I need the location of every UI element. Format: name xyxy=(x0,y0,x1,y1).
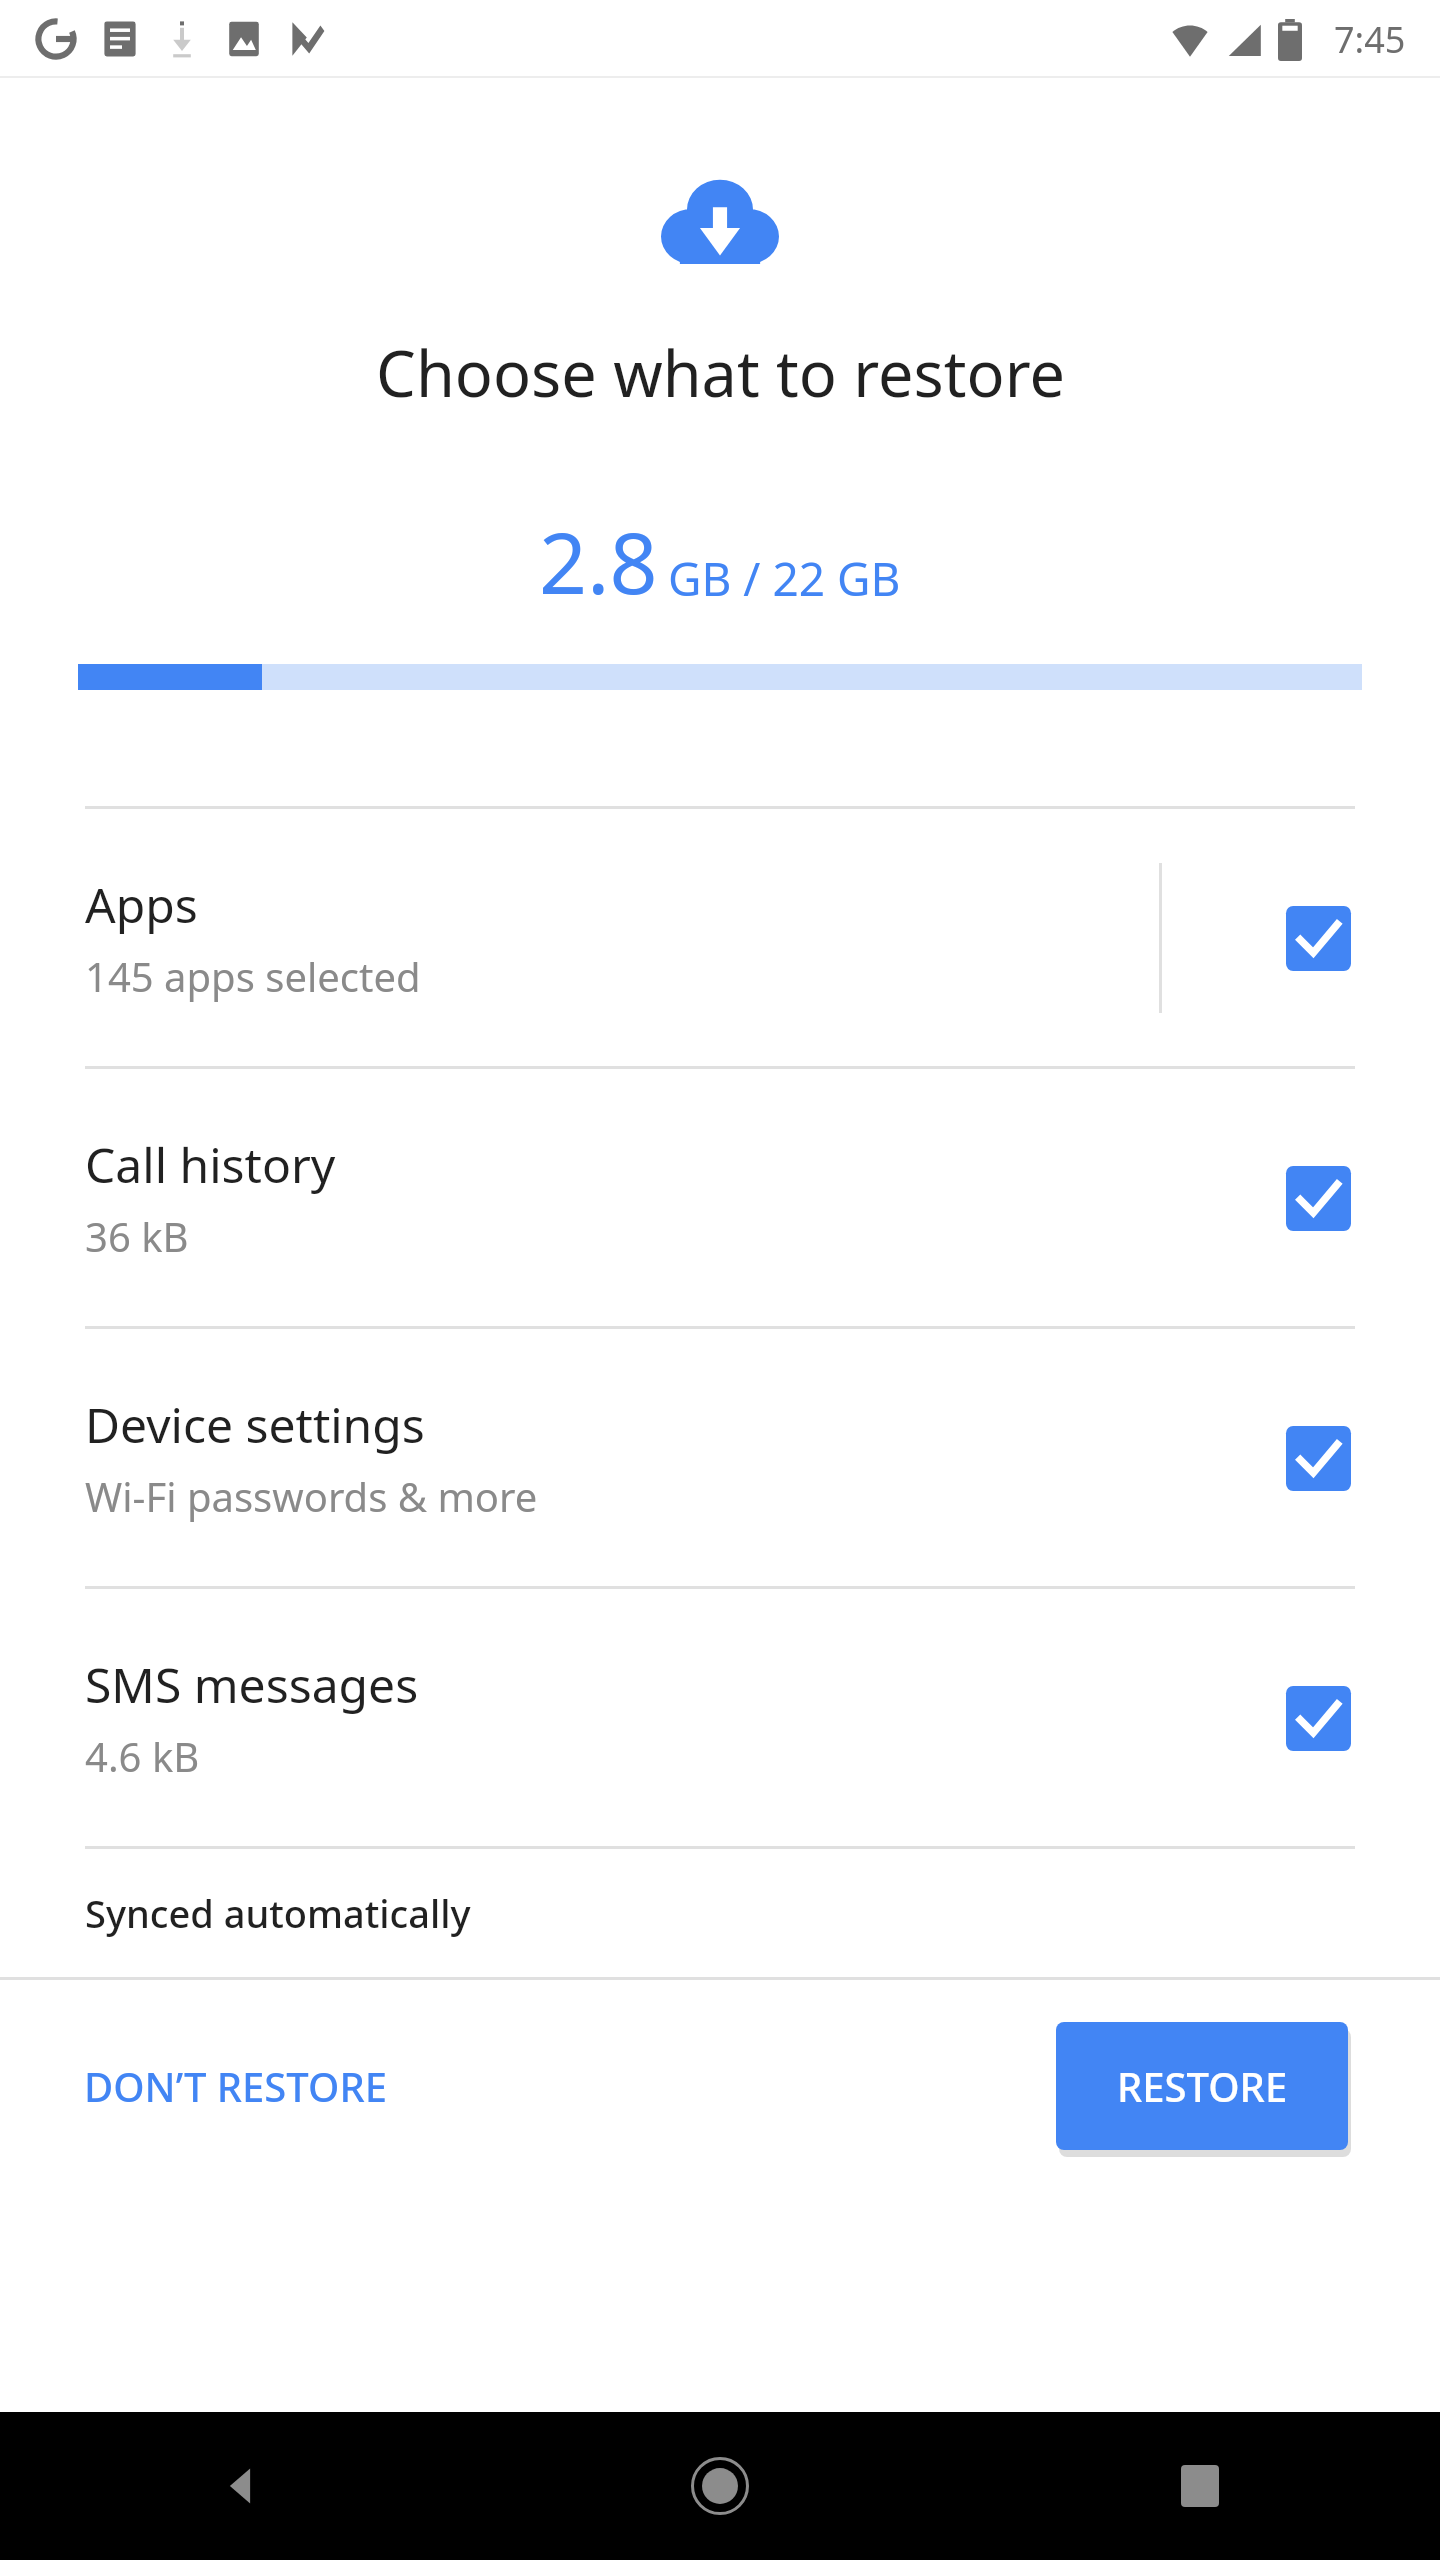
button[interactable]: Call history checkbox xyxy=(1270,1150,1366,1246)
button[interactable]: Apps checkbox xyxy=(1270,890,1366,986)
button[interactable]: RESTORE xyxy=(1056,2022,1348,2150)
staticText: Apps xyxy=(85,872,198,937)
staticText: RESTORE xyxy=(1117,2059,1288,2113)
staticText: Synced automatically xyxy=(85,1887,471,1939)
button[interactable]: Call history xyxy=(0,1069,1440,1326)
button[interactable]: Apps xyxy=(0,809,1440,1066)
staticText: Device settings xyxy=(85,1392,425,1457)
staticText: Call history xyxy=(85,1132,336,1197)
button[interactable]: Device settings checkbox xyxy=(1270,1410,1366,1506)
staticText: 36 kB xyxy=(85,1209,189,1263)
staticText: 7:45 xyxy=(1334,15,1406,64)
button[interactable]: Home xyxy=(480,2412,960,2560)
staticText: SMS messages xyxy=(85,1652,419,1717)
button[interactable]: SMS messages xyxy=(0,1589,1440,1846)
button[interactable]: DON’T RESTORE xyxy=(52,2033,419,2139)
staticText: 4.6 kB xyxy=(85,1729,200,1783)
button[interactable]: Back xyxy=(0,2412,480,2560)
staticText: GB / 22 GB xyxy=(668,547,901,610)
button[interactable]: Recent apps xyxy=(960,2412,1440,2560)
staticText: Choose what to restore xyxy=(376,330,1065,416)
staticText: 2.8 xyxy=(539,504,658,618)
staticText: 145 apps selected xyxy=(85,949,421,1003)
staticText: Wi-Fi passwords & more xyxy=(85,1469,538,1523)
button[interactable]: Device settings xyxy=(0,1329,1440,1586)
button[interactable]: SMS messages checkbox xyxy=(1270,1670,1366,1766)
staticText: DON’T RESTORE xyxy=(84,2059,387,2113)
